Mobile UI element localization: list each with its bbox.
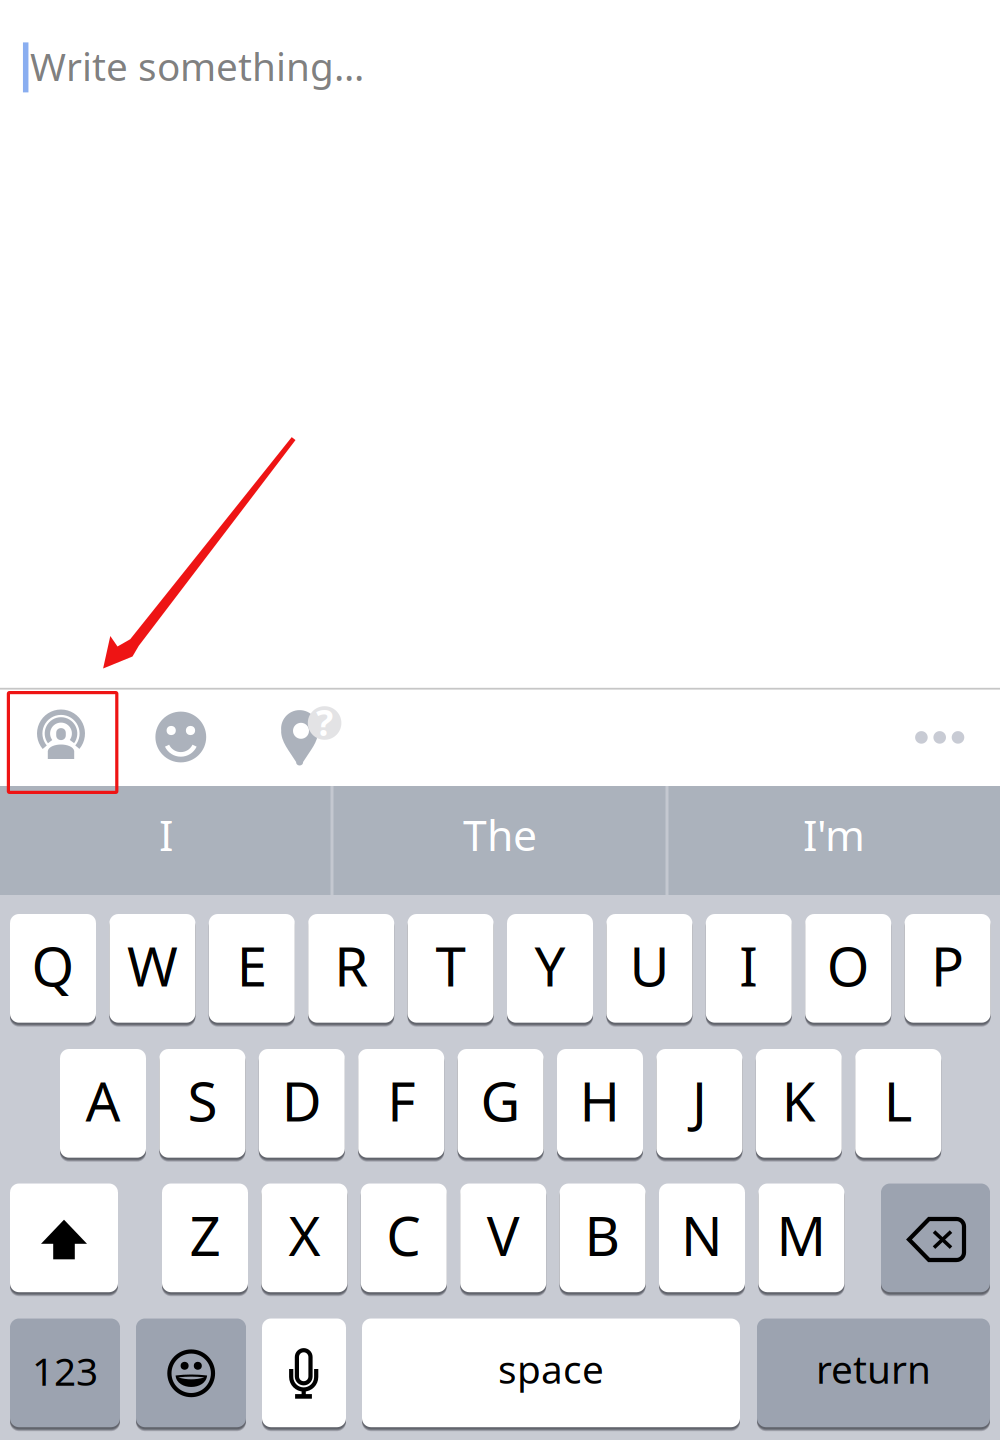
button[interactable]: Stickers — [130, 691, 230, 793]
staticText: C — [386, 1199, 421, 1271]
staticText: U — [629, 929, 669, 1002]
button[interactable]: X — [261, 1179, 347, 1296]
button[interactable]: L — [855, 1045, 941, 1162]
button[interactable]: The — [335, 786, 665, 895]
staticText: E — [237, 929, 267, 1002]
button[interactable]: R — [308, 910, 394, 1027]
staticText: R — [334, 929, 368, 1002]
button[interactable]: O — [805, 910, 891, 1027]
button[interactable]: M — [758, 1179, 844, 1296]
button[interactable]: Location — [250, 691, 350, 793]
button[interactable]: Dictation — [262, 1314, 346, 1431]
staticText: F — [387, 1064, 415, 1137]
button[interactable]: P — [905, 910, 991, 1027]
button[interactable]: space — [362, 1314, 740, 1431]
staticText: X — [288, 1199, 320, 1271]
staticText: space — [498, 1343, 604, 1394]
staticText: 123 — [32, 1345, 98, 1396]
button[interactable]: Y — [507, 910, 593, 1027]
button[interactable]: Write something... — [0, 0, 1000, 687]
staticText: ? — [316, 698, 333, 746]
staticText: V — [487, 1199, 520, 1271]
staticText: Write something... — [30, 40, 364, 92]
staticText: D — [282, 1064, 322, 1137]
button[interactable]: K — [756, 1045, 842, 1162]
button[interactable]: W — [109, 910, 195, 1027]
staticText: T — [436, 929, 466, 1002]
button[interactable]: Memoji — [7, 691, 117, 793]
button[interactable]: B — [560, 1179, 646, 1296]
button[interactable]: V — [460, 1179, 546, 1296]
staticText: Z — [189, 1199, 220, 1271]
staticText: G — [481, 1064, 521, 1137]
button[interactable]: return — [757, 1314, 990, 1431]
staticText: M — [776, 1199, 826, 1271]
button[interactable]: Emoji — [136, 1314, 246, 1431]
button[interactable]: Delete — [881, 1179, 990, 1296]
button[interactable]: J — [656, 1045, 742, 1162]
staticText: Q — [31, 929, 74, 1002]
button[interactable]: T — [408, 910, 494, 1027]
button[interactable]: 123 — [10, 1314, 120, 1431]
staticText: P — [931, 929, 964, 1002]
staticText: B — [585, 1199, 621, 1271]
button[interactable]: I'm — [669, 786, 999, 895]
staticText: K — [782, 1064, 816, 1137]
staticText: I — [739, 929, 758, 1002]
button[interactable]: Z — [162, 1179, 248, 1296]
staticText: I — [159, 806, 173, 863]
button[interactable]: Q — [10, 910, 96, 1027]
staticText: The — [463, 806, 537, 863]
button[interactable]: F — [358, 1045, 444, 1162]
button[interactable]: Shift — [10, 1179, 118, 1296]
button[interactable]: G — [458, 1045, 544, 1162]
button[interactable]: I — [706, 910, 792, 1027]
button[interactable]: A — [60, 1045, 146, 1162]
button[interactable]: N — [659, 1179, 745, 1296]
staticText: I'm — [803, 806, 865, 863]
button[interactable]: D — [259, 1045, 345, 1162]
staticText: N — [681, 1199, 723, 1271]
button[interactable]: More apps — [890, 689, 990, 785]
button[interactable]: H — [557, 1045, 643, 1162]
staticText: J — [692, 1064, 707, 1137]
staticText: S — [187, 1064, 217, 1137]
staticText: L — [884, 1064, 913, 1137]
button[interactable]: S — [159, 1045, 245, 1162]
staticText: W — [127, 929, 178, 1002]
staticText: Y — [534, 929, 565, 1002]
button[interactable]: E — [209, 910, 295, 1027]
button[interactable]: C — [361, 1179, 447, 1296]
staticText: return — [816, 1343, 931, 1394]
staticText: A — [85, 1064, 120, 1137]
staticText: O — [827, 929, 870, 1002]
staticText: H — [579, 1064, 620, 1137]
button[interactable]: U — [606, 910, 692, 1027]
button[interactable]: I — [1, 786, 331, 895]
